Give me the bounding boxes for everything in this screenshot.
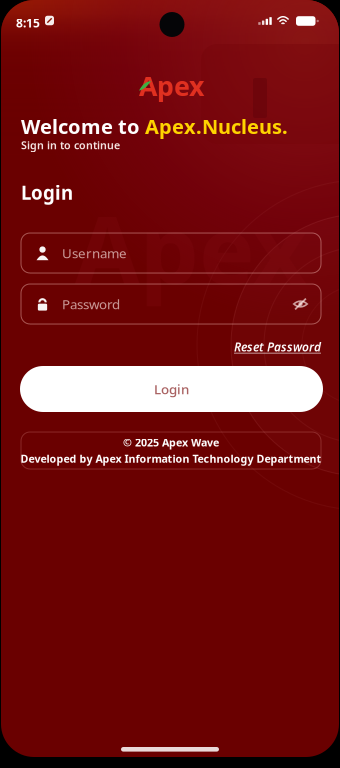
staticText: Sign in to continue bbox=[21, 138, 120, 152]
staticText: © 2025 Apex Wave bbox=[123, 435, 219, 449]
button[interactable]: Reset Password bbox=[21, 339, 321, 355]
staticText: Username bbox=[62, 244, 127, 262]
staticText: Reset Password bbox=[234, 339, 321, 355]
staticText: Apex bbox=[75, 186, 307, 310]
button[interactable]: Login bbox=[20, 366, 323, 412]
staticText: Apex.Nucleus. bbox=[145, 113, 288, 140]
button[interactable]: Password bbox=[21, 284, 321, 324]
button[interactable]: Username bbox=[21, 233, 321, 273]
staticText: 8:15 bbox=[16, 15, 40, 31]
staticText: Apex bbox=[139, 68, 204, 103]
staticText: Login bbox=[21, 180, 73, 205]
staticText: Password bbox=[62, 295, 120, 313]
staticText: Developed by Apex Information Technology… bbox=[20, 451, 321, 466]
staticText: Login bbox=[154, 380, 189, 398]
staticText: Welcome to bbox=[21, 113, 145, 140]
